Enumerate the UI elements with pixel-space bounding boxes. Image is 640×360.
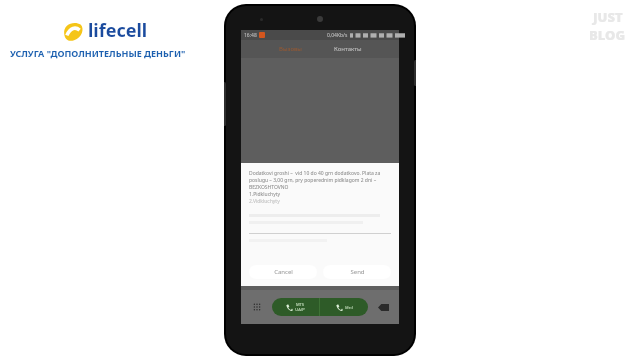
staticText: 0,04Kb/s [327,32,348,39]
button[interactable]: Backspace [375,299,391,315]
staticText: Cancel [274,268,293,276]
staticText: Вызовы [279,45,302,53]
staticText: lifecell [88,18,148,43]
staticText: 16:48 [244,32,257,39]
button[interactable]: Вызовы [269,42,312,56]
staticText: 1.Pidkluchyty [249,191,281,198]
button[interactable]: life:) [320,298,368,316]
staticText: УСЛУГА "ДОПОЛНИТЕЛЬНЫЕ ДЕНЬГИ" [10,47,186,59]
staticText: Dodatkovi groshi – vid 10 do 40 grn doda… [249,170,391,191]
staticText: BLOG [589,26,626,44]
staticText: Send [350,268,365,276]
staticText: life:) [345,305,353,310]
staticText: Контакты [334,45,362,53]
staticText: 2.Vidkluchyty [249,198,280,205]
staticText: MTS UA/P [295,302,305,312]
button[interactable]: Send [323,265,391,279]
button[interactable]: Dialpad [249,299,265,315]
button[interactable]: Контакты [324,42,372,56]
button[interactable]: Cancel [249,265,317,279]
button[interactable]: MTS UA/P [272,298,319,316]
staticText: JUST [593,8,623,26]
